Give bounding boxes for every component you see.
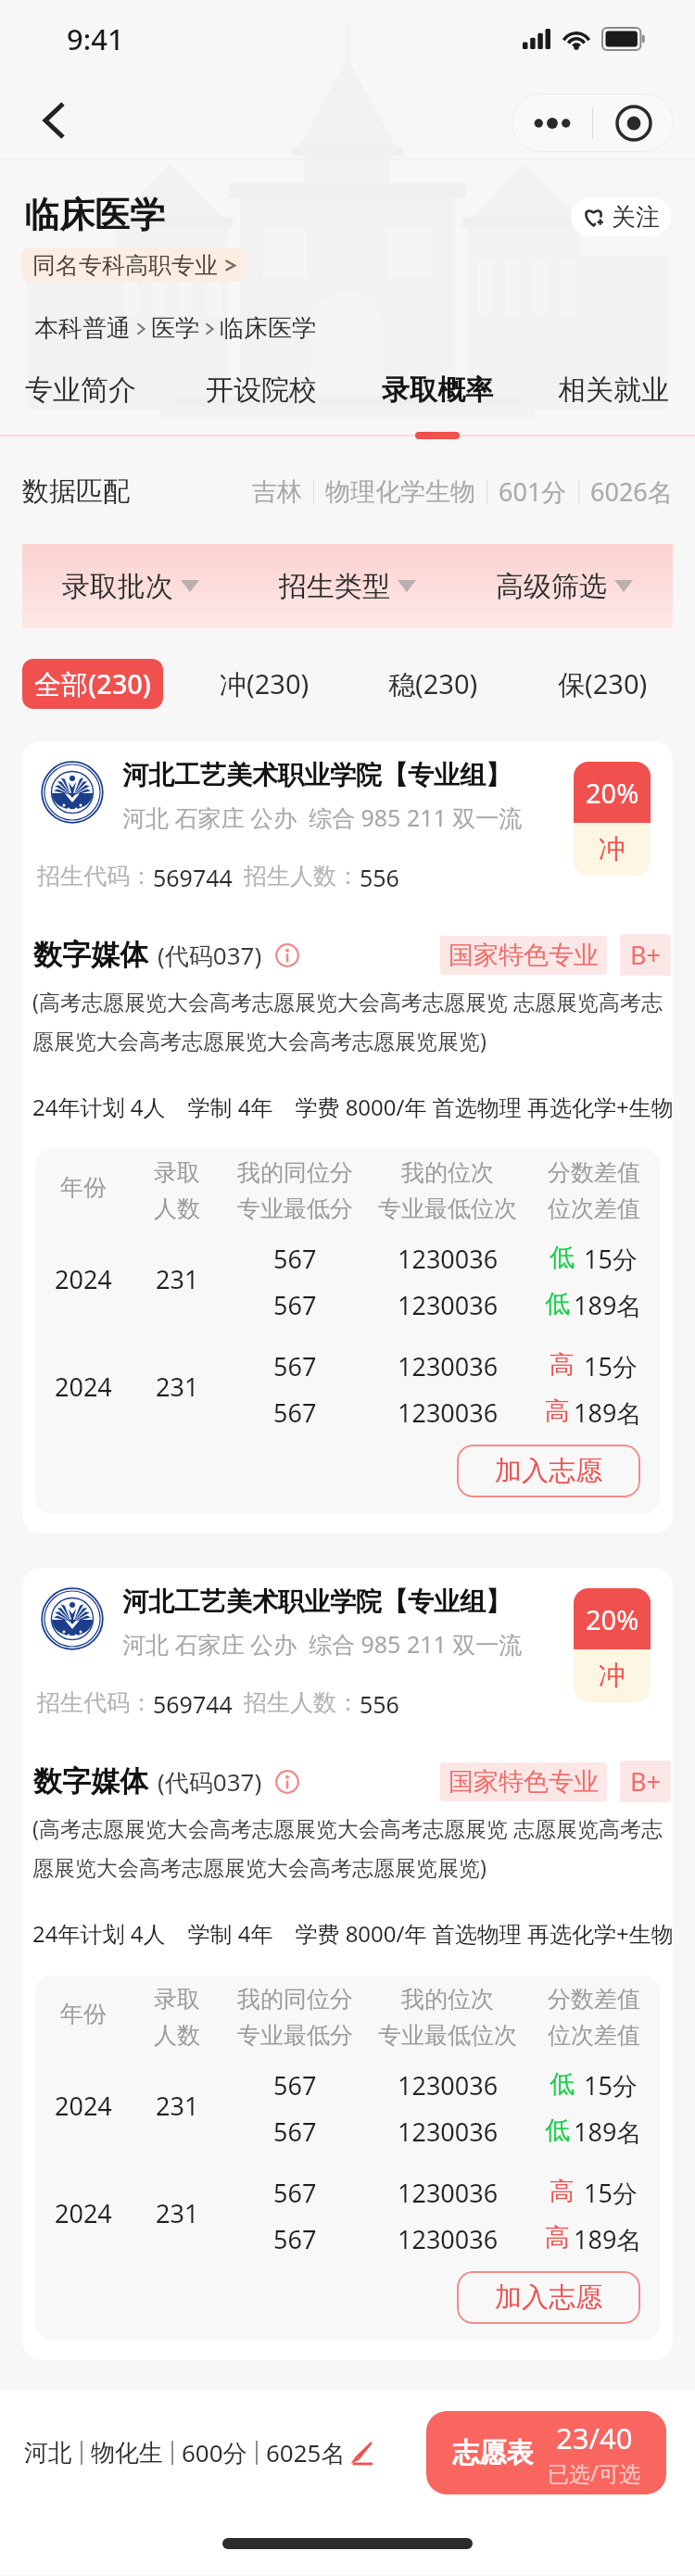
staticText: 加入志愿 [495,2280,602,2315]
staticText: 本科普通 [34,313,131,344]
staticText: 同名专科高职专业 [32,251,218,280]
button[interactable]: 全部(230) [22,659,163,709]
staticText: 1230036 [398,1242,499,1276]
staticText: 556 [360,862,399,893]
button[interactable]: 河北工艺美术职业学院【专业组】 [22,741,673,1534]
button[interactable]: 稳(230) [371,659,495,709]
staticText: 2024 [55,1262,112,1296]
staticText: 河北 [24,2438,72,2469]
staticText: 我的同位分 [237,1985,353,2014]
staticText: 24年计划 4人 学制 4年 学费 8000/年 首选物理 再选化学+生物 [32,1092,673,1122]
staticText: 567 [273,2115,317,2149]
staticText: 保(230) [558,665,648,702]
staticText: B+ [630,1764,661,1799]
button[interactable]: Back [28,95,80,146]
staticText: 569744 [153,1688,233,1720]
staticText: 吉林 [252,476,302,508]
staticText: 231 [156,1370,199,1404]
staticText: 556 [360,1688,399,1720]
staticText: 1230036 [398,2222,499,2256]
staticText: 15分 [584,2068,638,2102]
staticText: 分数差值 [548,1158,640,1187]
staticText: 关注 [612,202,660,233]
staticText: 河北 石家庄 公办 综合 985 211 双一流 [122,1628,523,1660]
staticText: 高 [545,2222,570,2254]
button[interactable]: 同名专科高职专业 [21,248,246,282]
staticText: 我的同位分 [237,1158,353,1187]
staticText: 全部(230) [34,665,151,702]
staticText: 高 [550,1349,575,1381]
button[interactable]: Close [593,94,674,152]
staticText: 567 [273,1349,317,1383]
staticText: 567 [273,1395,317,1430]
button[interactable]: 相关就业 [534,363,693,417]
button[interactable]: 冲(230) [202,659,326,709]
staticText: 我的位次 [401,1158,494,1187]
staticText: B+ [630,938,661,972]
staticText: 189名 [574,2115,642,2149]
staticText: (高考志愿展览大会高考志愿展览大会高考志愿展览 志愿展览高考志愿展览大会高考志愿… [32,1813,664,1882]
staticText: 1230036 [398,2068,499,2102]
button[interactable]: 加入志愿 [457,2271,640,2324]
button[interactable]: More [512,94,592,152]
staticText: 分数差值 [548,1985,640,2014]
staticText: (高考志愿展览大会高考志愿展览大会高考志愿展览 志愿展览高考志愿展览大会高考志愿… [32,987,664,1055]
staticText: 加入志愿 [495,1454,602,1488]
staticText: (代码037) [158,939,262,972]
button[interactable]: 专业简介 [1,363,160,417]
staticText: 567 [273,2222,317,2256]
staticText: 567 [273,2068,317,2102]
staticText: 数据匹配 [22,474,130,509]
staticText: (代码037) [158,1765,262,1799]
staticText: 临床医学 [220,313,316,344]
staticText: 高 [545,1395,570,1427]
button[interactable]: Info [275,1770,299,1794]
staticText: 录取概率 [382,373,493,408]
staticText: 1230036 [398,1288,499,1322]
staticText: 6025名 [266,2436,346,2469]
button[interactable]: 志愿表 [426,2411,666,2494]
button[interactable]: 招生类型 [239,544,456,628]
staticText: 567 [273,1288,317,1322]
staticText: 1230036 [398,1395,499,1430]
button[interactable]: 保(230) [540,659,664,709]
button[interactable]: 关注 [571,197,671,236]
staticText: 1230036 [398,2176,499,2210]
staticText: 冲(230) [220,665,310,702]
button[interactable]: Info [275,943,299,967]
staticText: 录取批次 [62,569,173,604]
staticText: 189名 [574,1288,642,1322]
staticText: 国家特色专业 [449,940,599,971]
staticText: 高级筛选 [496,569,607,604]
staticText: 1230036 [398,1349,499,1383]
staticText: 位次差值 [548,1194,640,1223]
staticText: 人数 [154,1194,200,1223]
button[interactable]: 河北工艺美术职业学院【专业组】 [22,1568,673,2360]
staticText: 601分 [499,474,567,509]
button[interactable]: 加入志愿 [457,1445,640,1497]
staticText: 专业最低分 [237,1194,353,1223]
staticText: 录取 [154,1985,200,2014]
button[interactable]: 高级筛选 [456,544,673,628]
staticText: 招生代码： [37,862,153,890]
button[interactable]: 录取概率 [358,363,517,417]
staticText: 冲 [599,1659,625,1693]
staticText: 15分 [584,1242,638,1276]
staticText: 医学 [151,313,199,344]
staticText: 567 [273,1242,317,1276]
staticText: 2024 [55,2196,112,2230]
staticText: 志愿表 [452,2436,533,2470]
staticText: 开设院校 [206,373,317,408]
staticText: 物化生 [91,2438,163,2469]
staticText: 招生人数： [244,1688,360,1717]
staticText: 低 [550,1242,575,1273]
staticText: 专业最低位次 [378,1194,517,1223]
staticText: 15分 [584,2176,638,2210]
button[interactable]: 河北 [24,2436,374,2469]
staticText: 物理化学生物 [325,476,475,508]
button[interactable]: 开设院校 [182,363,341,417]
staticText: 数字媒体 [33,1763,148,1799]
staticText: 年份 [60,2000,107,2028]
button[interactable]: 录取批次 [22,544,239,628]
staticText: 稳(230) [388,665,478,702]
